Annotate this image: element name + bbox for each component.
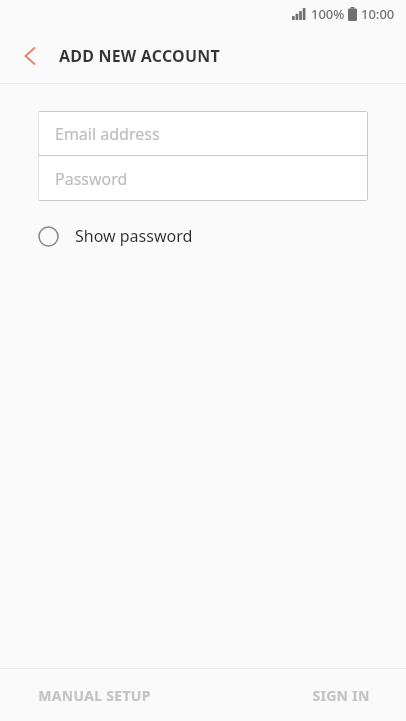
staticText: 10:00 bbox=[361, 5, 395, 23]
button[interactable]: MANUAL SETUP bbox=[22, 676, 167, 715]
other: Battery full bbox=[348, 7, 357, 21]
staticText: MANUAL SETUP bbox=[38, 686, 151, 705]
staticText: 100% bbox=[311, 5, 345, 23]
button[interactable]: Email address bbox=[38, 111, 368, 156]
staticText: Email address bbox=[55, 123, 160, 145]
other: Signal strength bbox=[292, 8, 306, 20]
staticText: Show password bbox=[75, 225, 193, 247]
button[interactable]: Show password bbox=[28, 219, 207, 253]
button[interactable]: SIGN IN bbox=[296, 676, 386, 715]
staticText: ADD NEW ACCOUNT bbox=[59, 45, 220, 67]
button[interactable]: Back bbox=[10, 36, 50, 76]
button[interactable]: Password bbox=[38, 156, 368, 201]
staticText: SIGN IN bbox=[312, 686, 370, 705]
staticText: Password bbox=[55, 168, 128, 190]
